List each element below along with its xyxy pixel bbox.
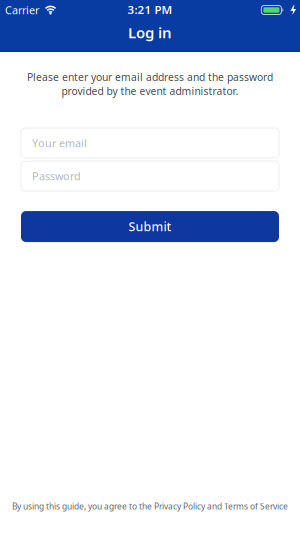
staticText: provided by the event administrator. bbox=[61, 84, 238, 98]
staticText: Password bbox=[32, 169, 81, 183]
button[interactable]: Password bbox=[21, 161, 279, 191]
button[interactable]: Your email bbox=[21, 128, 279, 158]
button[interactable]: Submit bbox=[21, 211, 279, 242]
staticText: and bbox=[205, 501, 224, 512]
staticText: Log in bbox=[128, 22, 172, 43]
button[interactable]: Terms of Service bbox=[224, 501, 288, 512]
staticText: Privacy Policy bbox=[154, 501, 205, 512]
button[interactable]: Privacy Policy bbox=[154, 501, 205, 512]
staticText: Please enter your email address and the … bbox=[27, 70, 273, 84]
staticText: Your email bbox=[32, 136, 87, 150]
staticText: Carrier bbox=[5, 3, 39, 17]
staticText: Terms of Service bbox=[224, 501, 288, 512]
staticText: 3:21 PM bbox=[127, 2, 172, 17]
staticText: By using this guide, you agree to the bbox=[12, 501, 154, 512]
staticText: Submit bbox=[128, 218, 171, 235]
